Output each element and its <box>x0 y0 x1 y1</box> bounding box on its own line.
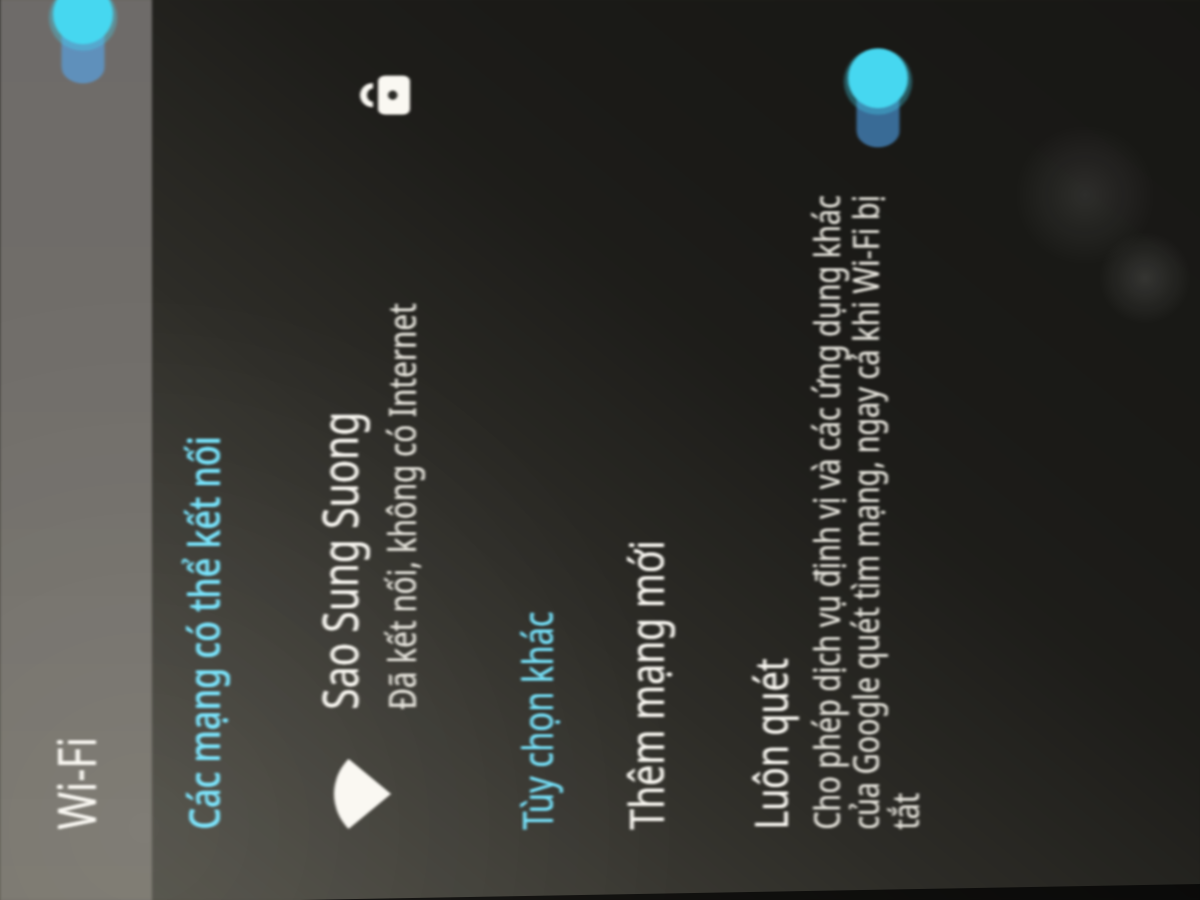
button[interactable]: Sao Sung Suong <box>274 0 446 900</box>
button[interactable]: Luôn quét <box>739 0 939 900</box>
button[interactable]: Thêm mạng mới <box>613 540 678 830</box>
button[interactable]: Các mạng có thể kết nối <box>173 436 233 830</box>
button[interactable]: Toggle always scanning <box>847 7 909 147</box>
button[interactable]: Tùy chọn khác <box>508 611 565 830</box>
button[interactable]: Toggle Wi-Fi <box>52 0 114 83</box>
staticText: Wi-Fi <box>40 737 111 830</box>
staticText: Luôn quét <box>739 657 802 830</box>
staticText: Sao Sung Suong <box>305 412 373 710</box>
staticText: Cho phép dịch vụ định vị và các ứng dụng… <box>800 182 930 830</box>
staticText: Đã kết nối, không có Internet <box>375 303 427 710</box>
